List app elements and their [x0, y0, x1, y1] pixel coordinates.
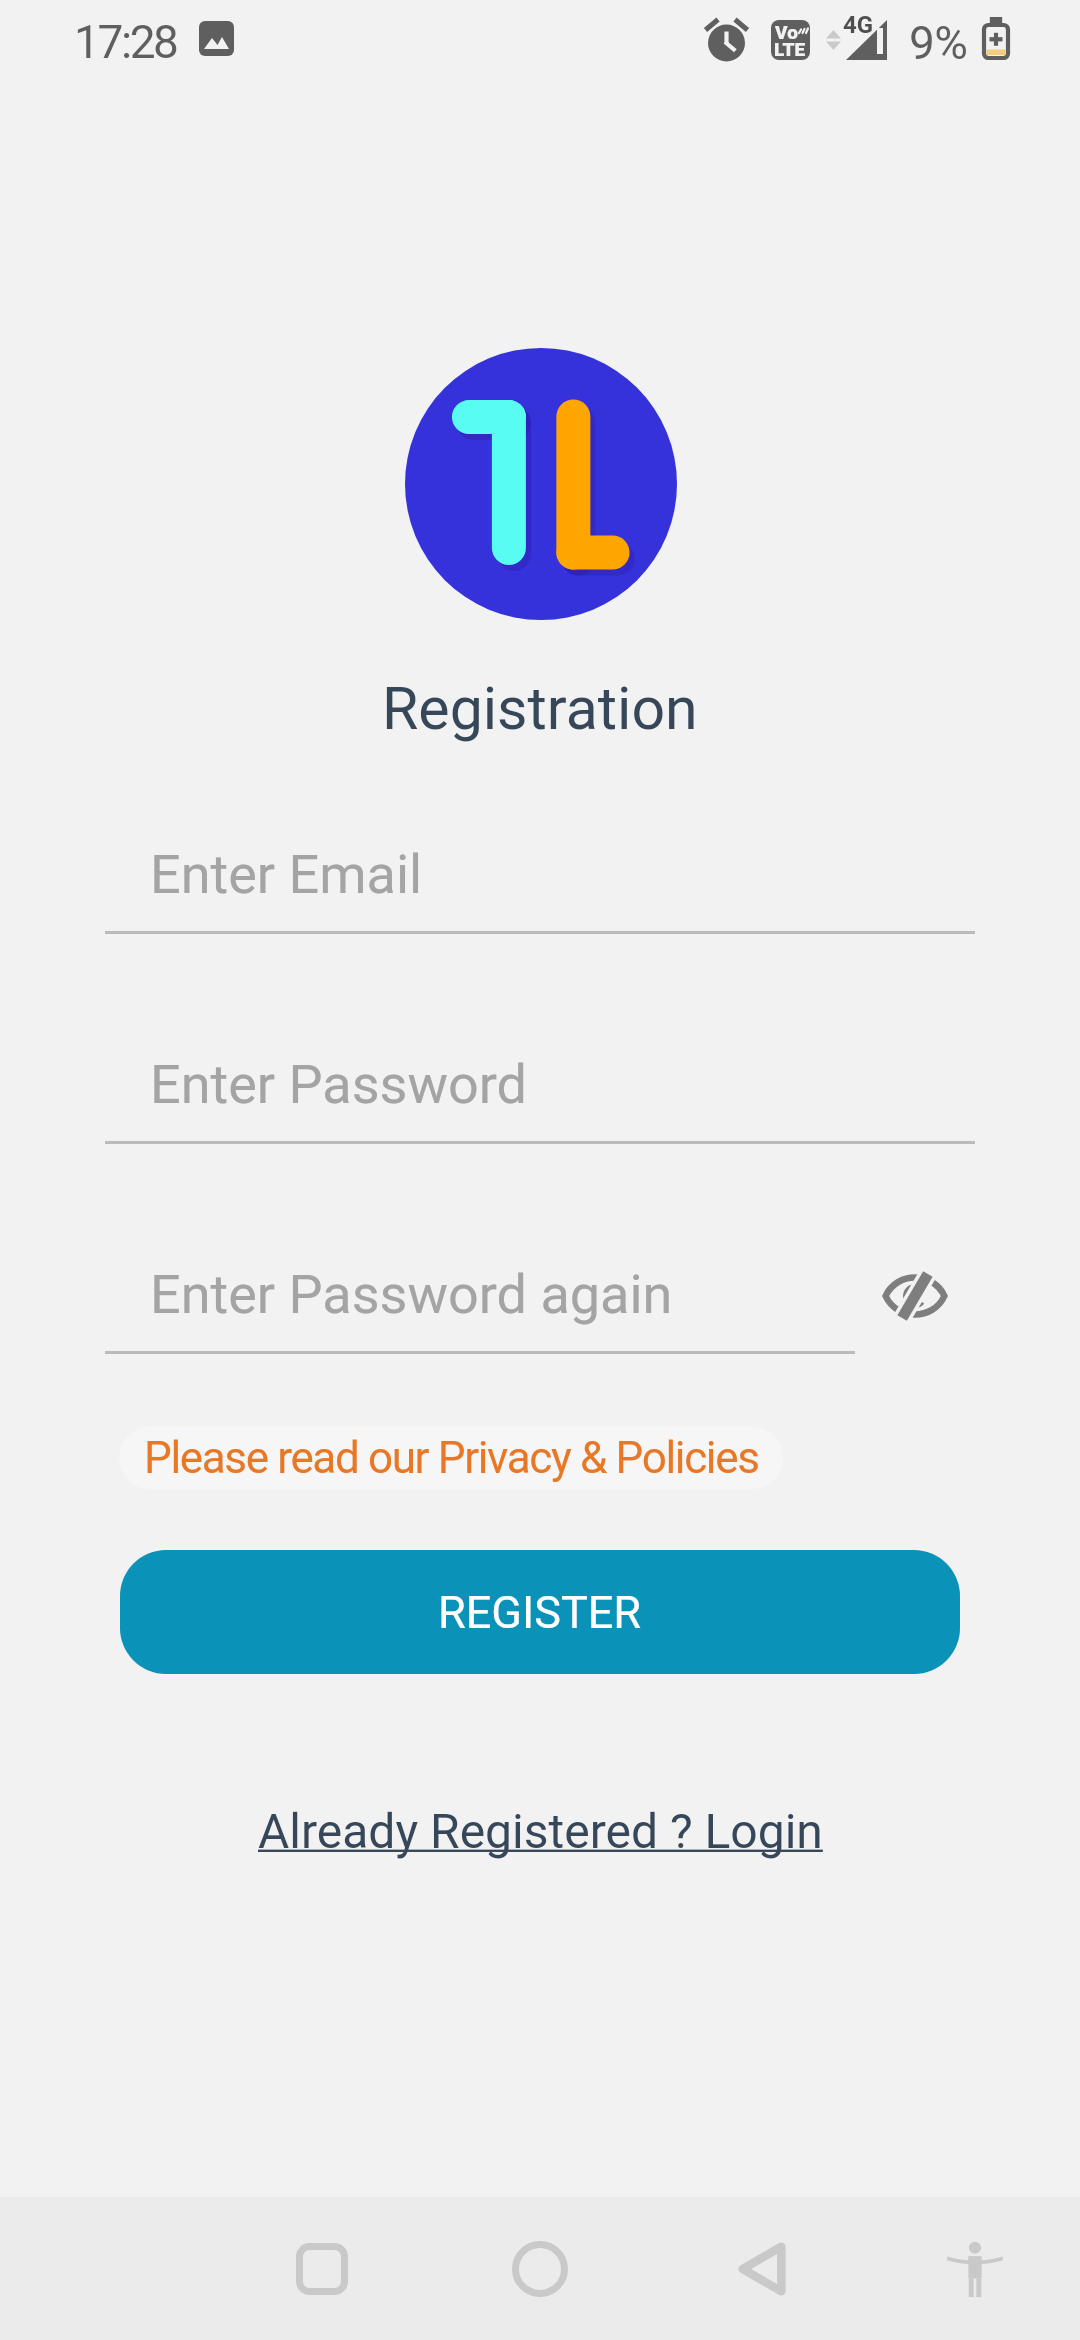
staticText: 17:28 [74, 15, 177, 69]
staticText: Already Registered ? Login [258, 1803, 823, 1859]
button[interactable]: Enter Email [105, 839, 975, 934]
button[interactable]: Recents [274, 2221, 370, 2317]
button[interactable]: Already Registered ? Login [250, 1799, 831, 1863]
staticText: LTE [774, 38, 806, 60]
button[interactable]: Enter Password again [105, 1259, 855, 1354]
staticText: 9% [909, 16, 968, 70]
button[interactable]: Accessibility [927, 2221, 1023, 2317]
staticText: REGISTER [438, 1586, 642, 1639]
button[interactable]: Please read our Privacy & Policies [119, 1427, 783, 1489]
button[interactable]: Home [492, 2221, 588, 2317]
staticText: Enter Password [150, 1053, 528, 1116]
button[interactable]: Enter Password [105, 1049, 975, 1144]
button[interactable]: Toggle password visibility [873, 1254, 957, 1338]
staticText: Enter Password again [150, 1263, 673, 1326]
staticText: Registration [382, 674, 698, 743]
staticText: 4G [843, 11, 874, 39]
button[interactable]: REGISTER [120, 1550, 960, 1674]
button[interactable]: Back [714, 2221, 810, 2317]
staticText: Please read our Privacy & Policies [144, 1432, 759, 1484]
staticText: Vo [775, 21, 798, 43]
staticText: Enter Email [150, 843, 423, 906]
